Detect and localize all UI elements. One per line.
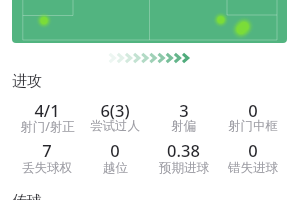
staticText: 0 [248, 139, 258, 161]
staticText: 3 [179, 99, 189, 121]
other: Momentum [0, 51, 300, 65]
staticText: 射偏 [171, 118, 196, 134]
staticText: 传球 [12, 192, 42, 200]
staticText: 4/1 [34, 99, 60, 121]
staticText: 0.38 [167, 139, 200, 161]
staticText: 7 [42, 139, 52, 161]
button[interactable]: Shot map [12, 0, 287, 43]
staticText: 错失进球 [228, 160, 278, 176]
staticText: 尝试过人 [90, 118, 140, 134]
staticText: 6(3) [100, 99, 130, 121]
staticText: 0 [110, 139, 120, 161]
staticText: 预期进球 [159, 160, 209, 176]
staticText: 进攻 [12, 72, 42, 91]
staticText: 越位 [103, 160, 128, 176]
staticText: 0 [248, 99, 258, 121]
staticText: 射门/射正 [20, 118, 75, 135]
staticText: 丢失球权 [22, 160, 72, 176]
staticText: 射门中框 [228, 118, 278, 134]
